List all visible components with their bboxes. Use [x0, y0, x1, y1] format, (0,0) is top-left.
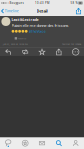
staticText: Favorite [18, 37, 26, 40]
staticText: Bouygues [9, 1, 23, 5]
button[interactable]: Profile [67, 138, 84, 148]
button[interactable]: Timeline [0, 138, 17, 148]
staticText: Jan 21, 2015 at 10:02 PM [3, 42, 28, 45]
button[interactable]: Messages [34, 138, 50, 148]
button[interactable]: More [67, 49, 84, 55]
button[interactable]: Share [50, 49, 67, 55]
staticText: Twitter for iPhone [62, 42, 81, 45]
staticText: 58 % [70, 1, 77, 5]
button[interactable]: Timeline [0, 6, 21, 16]
button[interactable]: Share [73, 6, 84, 16]
button[interactable]: Retweet [17, 49, 33, 55]
button[interactable]: Mentions [17, 138, 33, 148]
button[interactable]: Search [50, 138, 67, 148]
button[interactable]: Reply [0, 49, 17, 55]
staticText: 10:43 PM [35, 1, 49, 5]
staticText: Timeline [5, 9, 19, 13]
staticText: LastikLestrade [12, 17, 39, 22]
staticText: Detail [36, 8, 47, 14]
staticText: #TheVoice [29, 29, 46, 34]
staticText: Putain elle me donne des frissons [12, 23, 69, 28]
button[interactable]: Favorite [34, 49, 50, 55]
